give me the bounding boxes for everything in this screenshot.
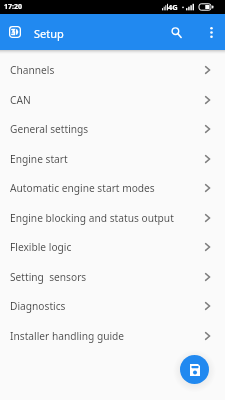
button[interactable]: CAN xyxy=(0,85,225,115)
staticText: 17:20 xyxy=(4,2,22,12)
button[interactable]: Automatic engine start modes xyxy=(0,173,225,203)
button[interactable]: Channels xyxy=(0,55,225,85)
staticText: Installer handling guide xyxy=(10,329,125,343)
button[interactable]: Search xyxy=(156,14,197,50)
button[interactable]: Navigate up xyxy=(4,21,26,43)
staticText: Engine blocking and status output xyxy=(10,211,174,225)
button[interactable]: General settings xyxy=(0,114,225,144)
button[interactable]: More options xyxy=(197,14,225,50)
staticText: Flexible logic xyxy=(10,240,72,254)
staticText: Automatic engine start modes xyxy=(10,181,155,195)
button[interactable]: Engine blocking and status output xyxy=(0,203,225,233)
button[interactable]: Flexible logic xyxy=(0,232,225,262)
staticText: Setting sensors xyxy=(10,270,87,284)
staticText: Engine start xyxy=(10,152,68,166)
button[interactable]: Engine start xyxy=(0,144,225,174)
staticText: Channels xyxy=(10,63,55,77)
button[interactable]: Installer handling guide xyxy=(0,321,225,351)
button[interactable]: Diagnostics xyxy=(0,291,225,321)
staticText: Diagnostics xyxy=(10,299,66,313)
staticText: General settings xyxy=(10,122,89,136)
staticText: CAN xyxy=(10,93,31,107)
button[interactable]: Setting sensors xyxy=(0,262,225,292)
button[interactable]: Save xyxy=(180,355,209,384)
staticText: 4G xyxy=(168,2,178,12)
staticText: Setup xyxy=(34,26,64,41)
